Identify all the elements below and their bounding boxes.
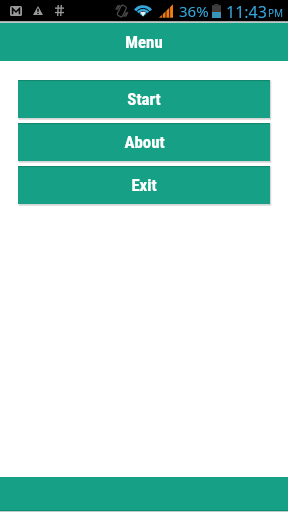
staticText: PM — [268, 6, 284, 20]
staticText: 36% — [179, 1, 209, 21]
staticText: 11:43 — [226, 1, 267, 21]
staticText: Exit — [131, 175, 157, 195]
button[interactable]: About — [18, 123, 270, 161]
button[interactable]: Start — [18, 80, 270, 118]
other: Vibrate mode — [114, 4, 128, 18]
staticText: Menu — [125, 32, 163, 52]
button[interactable]: Menu — [0, 23, 288, 61]
staticText: About — [124, 132, 165, 152]
staticText: Start — [127, 89, 161, 109]
button[interactable]: Exit — [18, 166, 270, 204]
